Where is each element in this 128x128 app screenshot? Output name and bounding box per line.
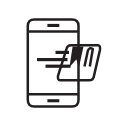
button[interactable]: Mobile shopping — [0, 0, 128, 128]
